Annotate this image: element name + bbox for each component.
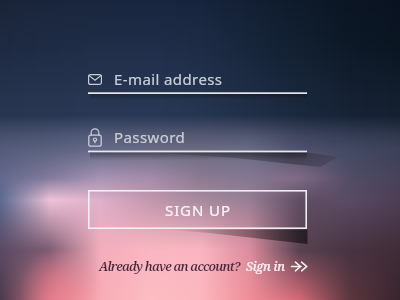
staticText: Password [114,127,186,147]
staticText: SIGN UP [165,200,231,220]
button[interactable]: E-mail address [88,68,307,90]
staticText: Already have an account? [99,258,240,275]
button[interactable]: Already have an account? [99,258,308,275]
staticText: Sign in [246,258,285,275]
button[interactable]: SIGN UP [88,190,307,229]
button[interactable]: Password [88,126,307,148]
staticText: E-mail address [114,69,223,89]
